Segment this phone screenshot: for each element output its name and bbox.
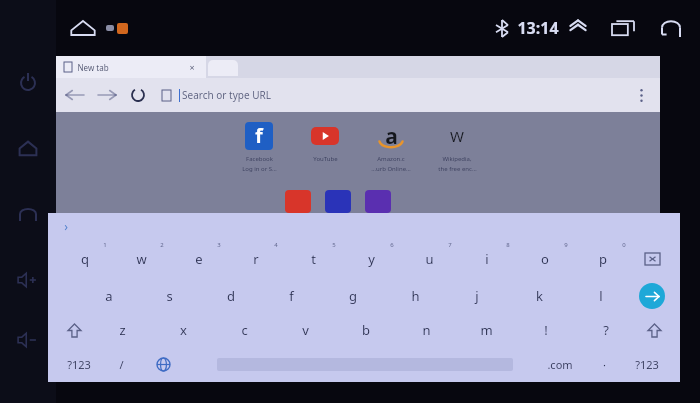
button[interactable]: q <box>56 239 113 279</box>
staticText: l <box>599 287 603 305</box>
button[interactable]: o <box>516 239 574 279</box>
staticText: v <box>302 321 309 339</box>
button[interactable]: Back <box>660 19 682 37</box>
staticText: w <box>136 250 147 268</box>
button[interactable]: i <box>458 239 516 279</box>
button[interactable]: Expand <box>568 19 588 37</box>
button[interactable]: Reload <box>130 87 146 103</box>
staticText: ?123 <box>67 357 91 372</box>
staticText: 4 <box>274 241 278 249</box>
staticText: q <box>81 250 89 268</box>
button[interactable]: Volume up <box>17 270 39 290</box>
button[interactable]: Forward <box>98 88 116 102</box>
button[interactable] <box>325 190 351 213</box>
button[interactable]: ?123 <box>624 347 670 381</box>
button[interactable]: Home <box>70 18 96 38</box>
staticText: g <box>349 287 357 305</box>
button[interactable] <box>285 190 311 213</box>
staticText: Wikipedia, <box>442 155 472 163</box>
button[interactable]: YouTube <box>299 122 351 163</box>
button[interactable]: ?123 <box>58 347 100 381</box>
button[interactable]: New tab <box>56 56 206 78</box>
button[interactable]: ! <box>516 313 576 347</box>
button[interactable]: y <box>342 239 400 279</box>
button[interactable]: p <box>574 239 632 279</box>
staticText: / <box>119 357 124 372</box>
button[interactable]: f <box>233 122 285 173</box>
button[interactable]: h <box>384 279 446 313</box>
button[interactable]: Bluetooth <box>496 20 508 37</box>
staticText: Amazon.c <box>377 155 405 163</box>
staticText: Facebook <box>246 155 273 163</box>
staticText: r <box>253 250 259 268</box>
button[interactable]: n <box>396 313 456 347</box>
staticText: c <box>241 321 248 339</box>
button[interactable]: a <box>78 279 139 313</box>
button[interactable]: g <box>322 279 384 313</box>
staticText: Search or type URL <box>182 88 271 102</box>
button[interactable]: w <box>113 239 170 279</box>
button[interactable]: Power <box>18 72 38 92</box>
button[interactable]: f <box>261 279 322 313</box>
button[interactable] <box>365 190 391 213</box>
staticText: ? <box>603 321 609 339</box>
staticText: j <box>475 287 479 305</box>
staticText: b <box>362 321 370 339</box>
staticText: 7 <box>448 241 452 249</box>
button[interactable]: r <box>227 239 284 279</box>
staticText: › <box>64 218 68 234</box>
staticText: a <box>105 287 113 305</box>
button[interactable]: ? <box>576 313 636 347</box>
button[interactable]: l <box>570 279 632 313</box>
staticText: n <box>422 321 431 339</box>
button[interactable]: v <box>275 313 336 347</box>
button[interactable]: Backspace <box>632 239 672 279</box>
button[interactable]: Back <box>18 204 38 224</box>
button[interactable]: Menu <box>632 83 650 107</box>
button[interactable]: k <box>508 279 570 313</box>
staticText: s <box>166 287 173 305</box>
button[interactable]: .com <box>536 347 584 381</box>
button[interactable]: e <box>170 239 227 279</box>
button[interactable]: W <box>431 122 483 173</box>
staticText: ?123 <box>635 357 659 372</box>
button[interactable]: d <box>200 279 261 313</box>
button[interactable]: Close tab <box>186 61 198 73</box>
button[interactable]: x <box>153 313 214 347</box>
button[interactable]: m <box>456 313 516 347</box>
staticText: d <box>227 287 235 305</box>
button[interactable]: t <box>284 239 342 279</box>
staticText: 6 <box>390 241 394 249</box>
button[interactable]: b <box>336 313 396 347</box>
staticText: W <box>450 126 464 146</box>
button[interactable]: j <box>446 279 508 313</box>
button[interactable]: s <box>139 279 200 313</box>
staticText: 13:14 <box>517 17 559 39</box>
button[interactable]: Shift <box>56 313 92 347</box>
button[interactable]: z <box>92 313 153 347</box>
button[interactable]: / <box>100 347 142 381</box>
button[interactable]: Home <box>18 138 38 158</box>
staticText: the free enc… <box>438 165 477 173</box>
staticText: Log in or S… <box>242 165 277 173</box>
staticText: t <box>311 250 316 268</box>
button[interactable]: u <box>400 239 458 279</box>
button[interactable]: Back <box>66 88 84 102</box>
button[interactable]: Search or type URL <box>162 78 632 112</box>
button[interactable]: · <box>584 347 624 381</box>
staticText: h <box>411 287 420 305</box>
button[interactable]: Recent apps <box>612 19 634 37</box>
button[interactable]: Change language <box>142 347 184 381</box>
button[interactable]: c <box>214 313 275 347</box>
button[interactable]: More suggestions <box>58 218 74 234</box>
staticText: e <box>195 250 203 268</box>
button[interactable]: a <box>365 122 417 173</box>
button[interactable]: Shift <box>636 313 672 347</box>
staticText: .com <box>547 357 573 372</box>
button[interactable]: 13:14 <box>517 17 559 39</box>
button[interactable]: Volume down <box>17 330 39 350</box>
button[interactable]: Go <box>639 283 665 309</box>
